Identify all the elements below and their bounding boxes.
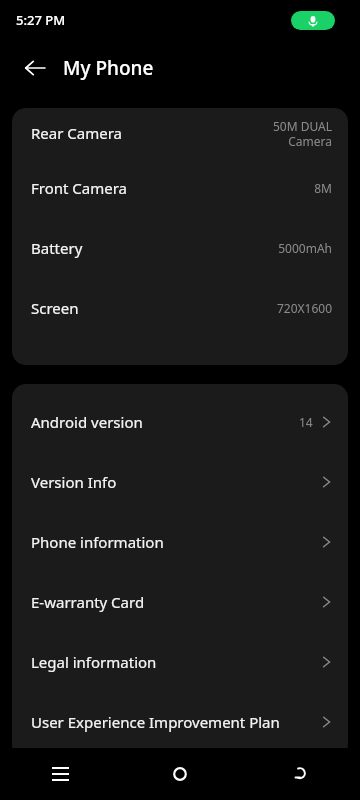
- staticText: User Experience Improvement Plan: [31, 712, 322, 732]
- staticText: Android version: [31, 412, 299, 432]
- button[interactable]: Home: [120, 748, 240, 800]
- button[interactable]: E-warranty Card: [12, 572, 348, 632]
- button[interactable]: User Experience Improvement Plan: [12, 692, 348, 752]
- staticText: Front Camera: [31, 178, 314, 198]
- staticText: Version Info: [31, 472, 322, 492]
- button[interactable]: Back: [240, 748, 360, 800]
- staticText: E-warranty Card: [31, 592, 322, 612]
- staticText: Battery: [31, 238, 278, 258]
- staticText: 5:27 PM: [16, 11, 66, 29]
- button[interactable]: Version Info: [12, 452, 348, 512]
- staticText: 8M: [314, 180, 332, 196]
- staticText: Legal information: [31, 652, 322, 672]
- button[interactable]: Front Camera: [12, 158, 348, 218]
- staticText: 720X1600: [276, 300, 332, 316]
- button[interactable]: Rear Camera: [12, 108, 348, 158]
- button[interactable]: Battery: [12, 218, 348, 278]
- button[interactable]: Back: [13, 46, 57, 90]
- button[interactable]: Android version: [12, 392, 348, 452]
- button[interactable]: Phone information: [12, 512, 348, 572]
- button[interactable]: Recent apps: [0, 748, 120, 800]
- staticText: Rear Camera: [31, 123, 272, 143]
- button[interactable]: Screen: [12, 278, 348, 338]
- button[interactable]: Legal information: [12, 632, 348, 692]
- staticText: Phone information: [31, 532, 322, 552]
- staticText: 5000mAh: [278, 240, 332, 256]
- staticText: 50M DUAL Camera: [272, 118, 332, 149]
- staticText: My Phone: [63, 55, 154, 81]
- staticText: Screen: [31, 298, 276, 318]
- staticText: 14: [299, 414, 313, 430]
